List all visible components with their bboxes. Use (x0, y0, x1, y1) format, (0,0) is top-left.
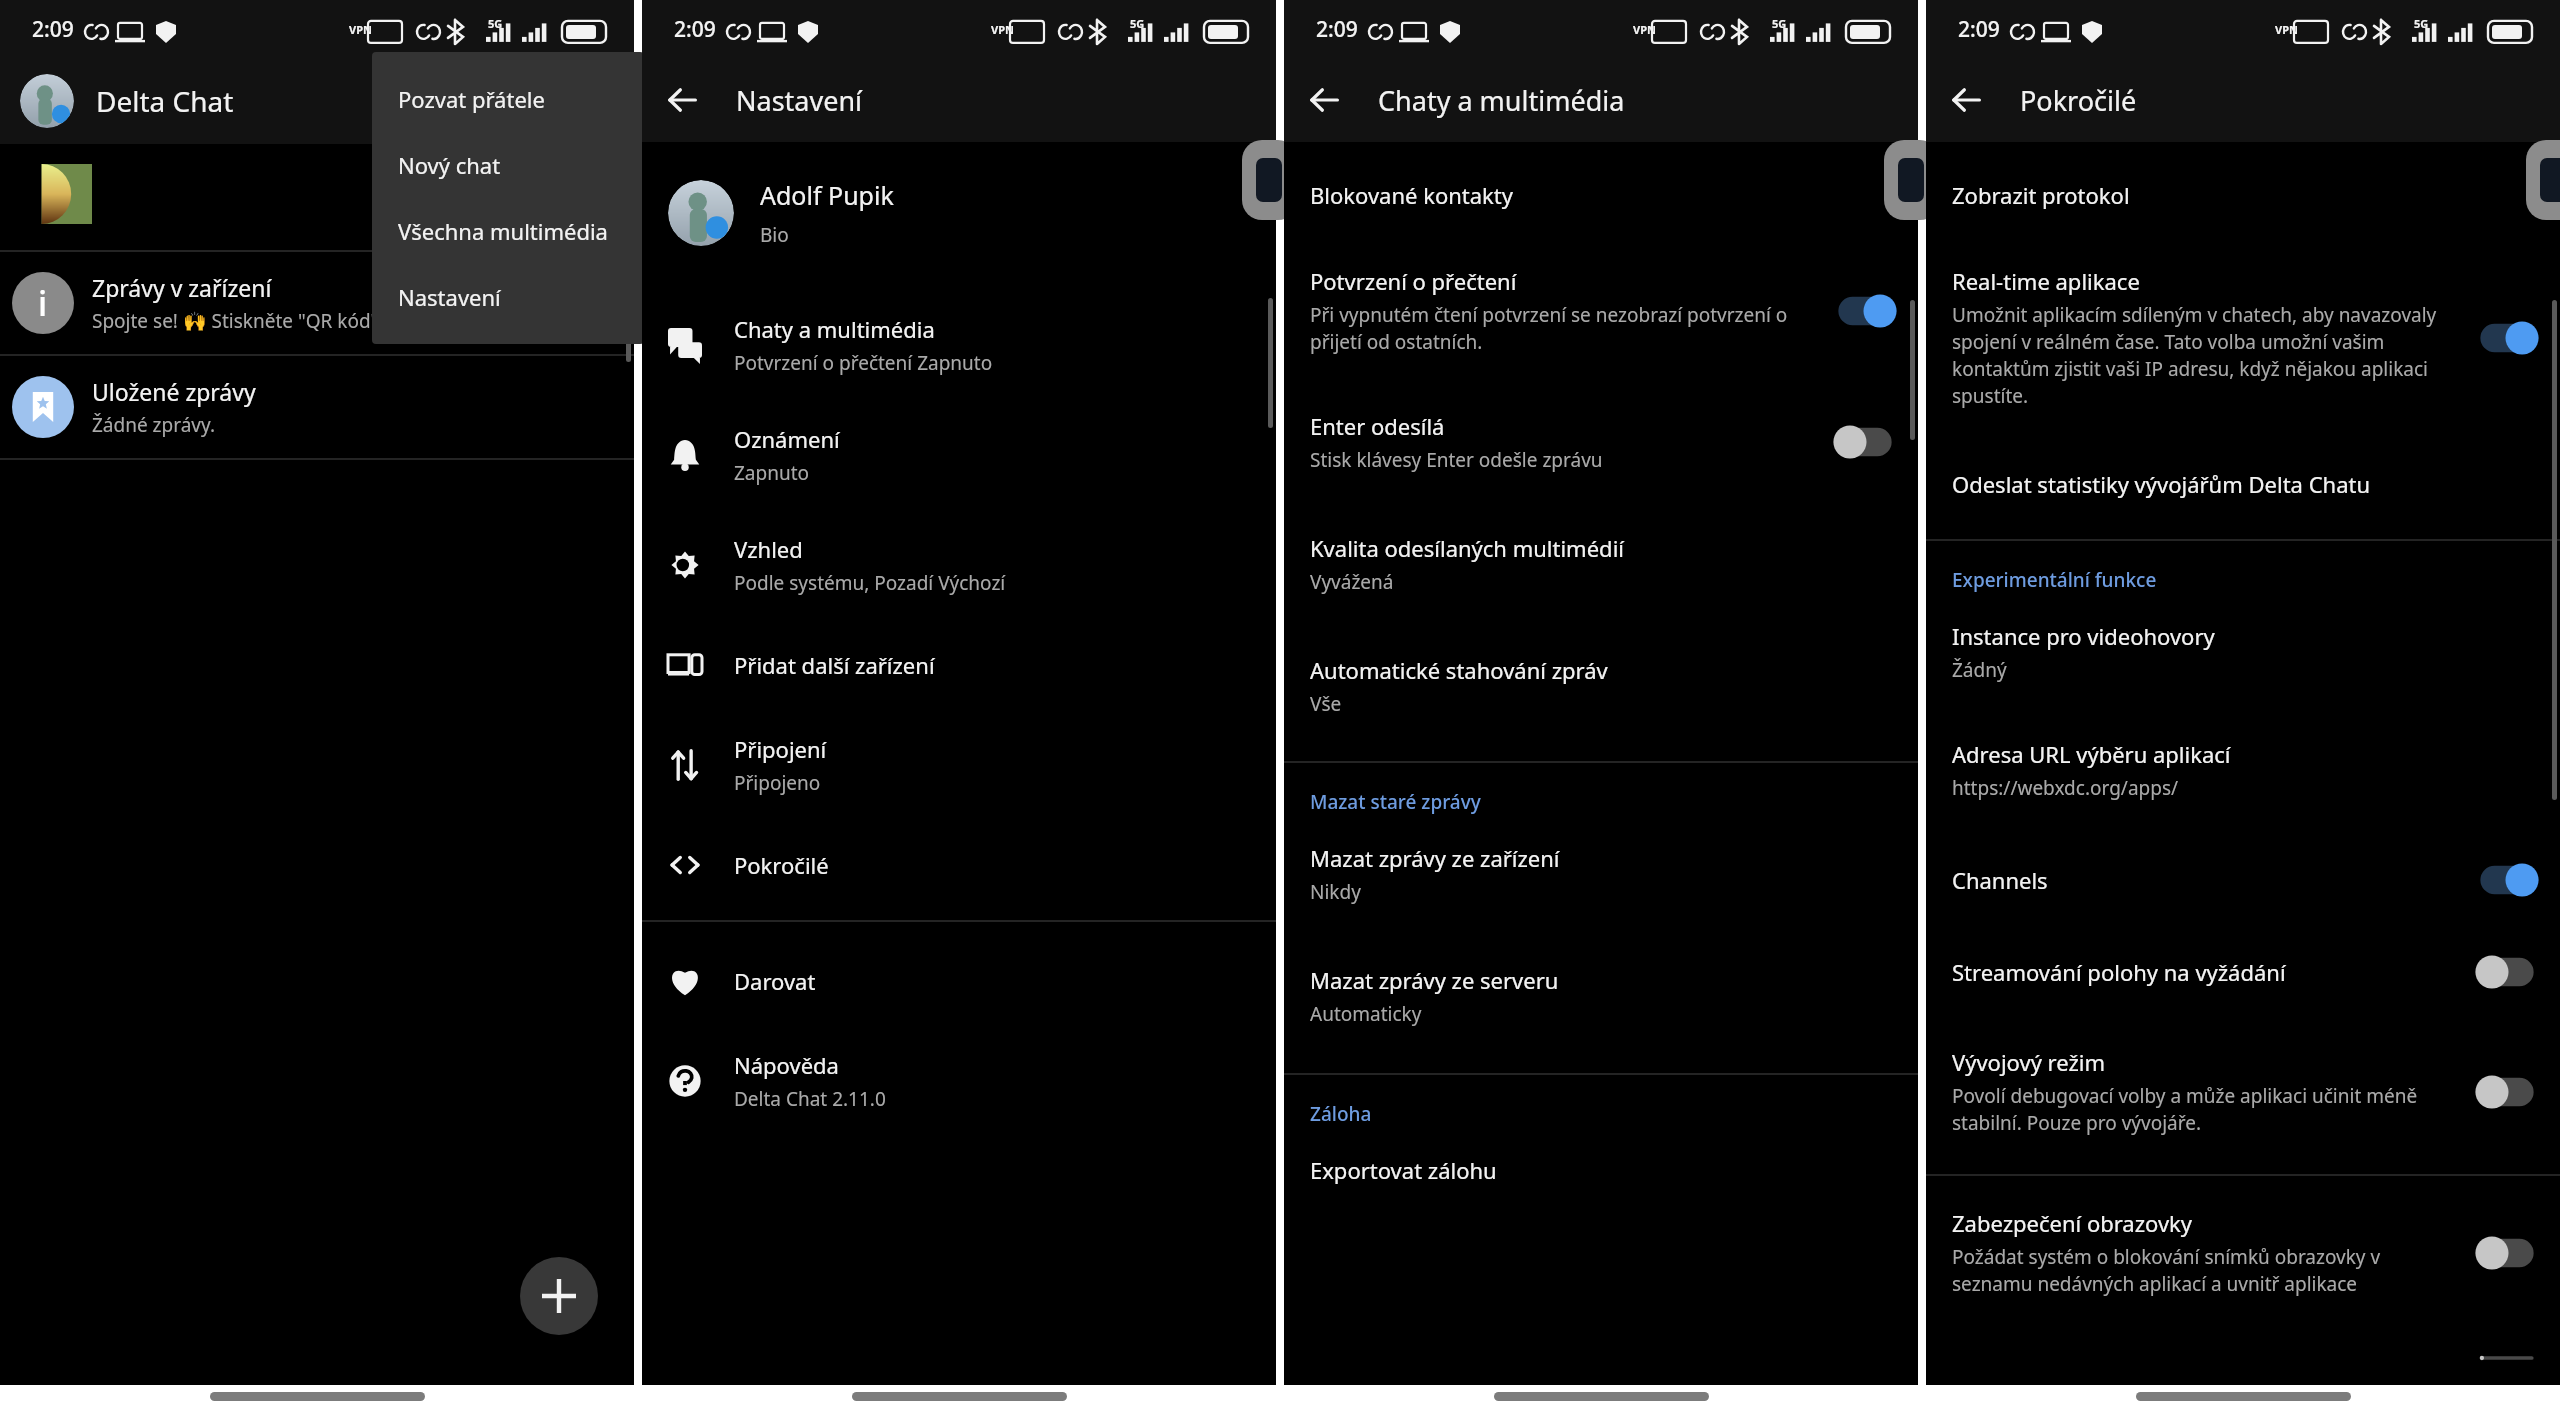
button[interactable]: Instance pro videohovory (1926, 605, 2560, 705)
staticText: Streamování polohy na vyžádání (1952, 957, 2286, 987)
staticText: Podle systému, Pozadí Výchozí (734, 570, 1006, 596)
staticText: Odeslat statistiky vývojářům Delta Chatu (1952, 469, 2371, 499)
button[interactable]: Profile (20, 74, 74, 128)
staticText: Přidat další zařízení (734, 650, 935, 680)
staticText: Zprávy v zařízení (92, 272, 272, 303)
staticText: 5G (1772, 16, 1787, 31)
button[interactable]: Switch on (2470, 315, 2544, 361)
button[interactable]: Switch off (2470, 1069, 2544, 1115)
staticText: Povolí debugovací volby a může aplikaci … (1952, 1083, 2462, 1136)
staticText: Chaty a multimédia (1378, 82, 1625, 119)
staticText: Vývojový režim (1952, 1047, 2105, 1077)
staticText: 5G (488, 16, 503, 31)
staticText: Nikdy (1310, 879, 1361, 905)
button[interactable]: Switch on (2470, 857, 2544, 903)
button[interactable]: Chráněná klávesnice (1926, 1331, 2560, 1385)
staticText: Channels (1952, 865, 2048, 895)
staticText: Připojení (734, 734, 827, 764)
staticText: Uložené zprávy (92, 376, 256, 407)
staticText: Zapnuto (734, 460, 810, 486)
button[interactable]: Mazat zprávy ze zařízení (1284, 827, 1918, 929)
staticText: Pokročilé (2020, 82, 2137, 119)
staticText: Delta Chat 2.11.0 (734, 1086, 886, 1112)
button[interactable]: Switch off (2470, 1230, 2544, 1276)
button[interactable]: Enter odesílá (1284, 387, 1918, 497)
button[interactable]: Přidat další zařízení (642, 620, 1276, 710)
button[interactable]: Blokované kontakty (1284, 158, 1918, 232)
staticText: Stisk klávesy Enter odešle zprávu (1310, 447, 1603, 473)
staticText: Žádné zprávy. (92, 412, 216, 438)
button[interactable]: Zabezpečení obrazovky (1926, 1184, 2560, 1321)
staticText: 2:09 (32, 15, 74, 44)
staticText: Nový chat (398, 150, 501, 180)
staticText: Exportovat zálohu (1310, 1155, 1497, 1185)
staticText: Potvrzení o přečtení (1310, 266, 1517, 296)
button[interactable]: Darovat (642, 936, 1276, 1026)
staticText: Kvalita odesílaných multimédií (1310, 533, 1624, 563)
button[interactable]: Nápověda (642, 1026, 1276, 1136)
staticText: Bio (760, 222, 789, 248)
staticText: 5G (2414, 16, 2429, 31)
staticText: Blokované kontakty (1310, 180, 1513, 210)
button[interactable]: Všechna multimédia (372, 198, 644, 264)
button[interactable]: Vývojový režim (1926, 1023, 2560, 1160)
staticText: Automatické stahování zpráv (1310, 655, 1608, 685)
staticText: VPN (1633, 22, 1656, 37)
staticText: VPN (991, 22, 1014, 37)
button[interactable]: Zobrazit protokol (1926, 158, 2560, 232)
button[interactable]: Uložené zprávy (0, 356, 634, 458)
button[interactable]: Potvrzení o přečtení (1284, 242, 1918, 379)
button[interactable]: Vzhled (642, 510, 1276, 620)
button[interactable]: Oznámení (642, 400, 1276, 510)
button[interactable]: Back (1284, 60, 1364, 140)
staticText: Adolf Pupik (760, 178, 894, 212)
staticText: Darovat (734, 966, 816, 996)
staticText: Pozvat přátele (398, 84, 545, 114)
button[interactable]: Pokročilé (642, 820, 1276, 910)
staticText: 2:09 (1316, 15, 1358, 44)
staticText: Zobrazit protokol (1952, 180, 2130, 210)
staticText: Nápověda (734, 1050, 839, 1080)
button[interactable]: Back (1926, 60, 2006, 140)
staticText: VPN (2275, 22, 2298, 37)
button[interactable]: Chaty a multimédia (642, 290, 1276, 400)
button[interactable]: i (0, 252, 634, 354)
staticText: 2:09 (1958, 15, 2000, 44)
button[interactable]: Pozvat přátele (372, 66, 644, 132)
button[interactable]: Připojení (642, 710, 1276, 820)
staticText: Enter odesílá (1310, 411, 1445, 441)
button[interactable]: Real-time aplikace (1926, 242, 2560, 433)
button[interactable]: Back (642, 60, 722, 140)
button[interactable]: Channels (1926, 839, 2560, 921)
staticText: 2:09 (674, 15, 716, 44)
button[interactable]: Adolf Pupik (642, 164, 1276, 262)
button[interactable]: New chat (520, 1257, 598, 1335)
staticText: Real-time aplikace (1952, 266, 2140, 296)
staticText: i (38, 280, 48, 326)
staticText: Adresa URL výběru aplikací (1952, 739, 2231, 769)
staticText: Při vypnutém čtení potvrzení se nezobraz… (1310, 302, 1820, 355)
button[interactable]: Odeslat statistiky vývojářům Delta Chatu (1926, 445, 2560, 523)
button[interactable]: Adresa URL výběru aplikací (1926, 715, 2560, 825)
staticText: Oznámení (734, 424, 840, 454)
staticText: Potvrzení o přečtení Zapnuto (734, 350, 993, 376)
button[interactable]: Kvalita odesílaných multimédií (1284, 509, 1918, 619)
staticText: Nastavení (736, 82, 863, 119)
button[interactable]: Switch on (1828, 288, 1902, 334)
button[interactable]: Exportovat zálohu (1284, 1139, 1918, 1209)
button[interactable]: Switch off (2470, 949, 2544, 995)
button[interactable]: Switch off (2470, 1355, 2544, 1361)
staticText: Vše (1310, 691, 1342, 717)
button[interactable]: Nastavení (372, 264, 644, 330)
button[interactable]: Nový chat (372, 132, 644, 198)
button[interactable]: Streamování polohy na vyžádání (1926, 931, 2560, 1013)
staticText: Chaty a multimédia (734, 314, 935, 344)
button[interactable]: Switch off (1828, 419, 1902, 465)
staticText: Žádný (1952, 657, 2007, 683)
staticText: Všechna multimédia (398, 216, 608, 246)
button[interactable]: Automatické stahování zpráv (1284, 631, 1918, 741)
staticText: Nastavení (398, 282, 501, 312)
staticText: Automaticky (1310, 1001, 1422, 1027)
button[interactable]: Mazat zprávy ze serveru (1284, 941, 1918, 1051)
